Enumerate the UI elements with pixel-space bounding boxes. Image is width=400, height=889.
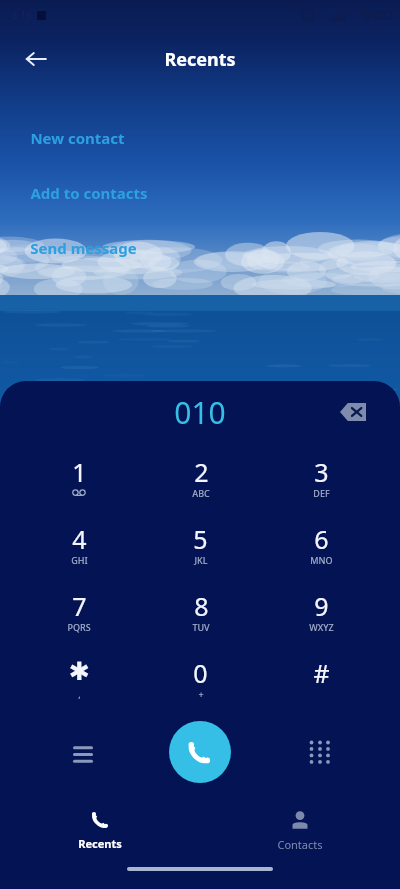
- button[interactable]: 4: [18, 510, 140, 577]
- staticText: Add to contacts: [30, 183, 148, 203]
- staticText: 6: [314, 522, 329, 552]
- button[interactable]: 3: [261, 443, 382, 510]
- staticText: Recents: [78, 836, 122, 851]
- staticText: MNO: [310, 554, 333, 566]
- button[interactable]: 8: [140, 577, 261, 644]
- staticText: WXYZ: [309, 621, 334, 633]
- staticText: 3: [314, 455, 329, 485]
- button[interactable]: Contacts: [200, 793, 400, 867]
- staticText: 0: [193, 656, 208, 686]
- button[interactable]: Back: [14, 37, 58, 81]
- button[interactable]: New contact: [0, 110, 400, 165]
- staticText: 5: [193, 522, 208, 552]
- staticText: JKL: [194, 554, 208, 566]
- button[interactable]: Keypad: [296, 729, 342, 775]
- staticText: New contact: [30, 128, 125, 148]
- staticText: 4: [72, 522, 87, 552]
- staticText: ✱: [69, 657, 90, 686]
- staticText: DEF: [313, 487, 330, 499]
- button[interactable]: 7: [18, 577, 140, 644]
- button[interactable]: Send message: [0, 220, 400, 275]
- button[interactable]: Add to contacts: [0, 165, 400, 220]
- button[interactable]: 9: [261, 577, 382, 644]
- button[interactable]: 5: [140, 510, 261, 577]
- button[interactable]: 2: [140, 443, 261, 510]
- staticText: Contacts: [277, 837, 323, 852]
- staticText: ,: [78, 688, 81, 700]
- staticText: 010: [174, 392, 226, 433]
- staticText: Send message: [30, 238, 137, 258]
- button[interactable]: #: [261, 644, 382, 711]
- staticText: +: [198, 688, 204, 700]
- button[interactable]: ✱: [18, 644, 140, 711]
- staticText: Recents: [164, 47, 236, 72]
- button[interactable]: Recents: [0, 793, 200, 867]
- staticText: #: [313, 656, 330, 686]
- staticText: ABC: [192, 487, 210, 499]
- staticText: 8: [194, 589, 209, 619]
- button[interactable]: Call: [169, 721, 231, 783]
- button[interactable]: Menu: [60, 729, 106, 775]
- button[interactable]: 6: [261, 510, 382, 577]
- staticText: TUV: [192, 621, 210, 633]
- staticText: 9: [314, 589, 329, 619]
- staticText: 1: [72, 455, 87, 485]
- staticText: 7: [72, 589, 87, 619]
- staticText: PQRS: [67, 621, 91, 633]
- staticText: GHI: [71, 554, 88, 566]
- staticText: 2: [194, 455, 209, 485]
- button[interactable]: 0: [140, 644, 261, 711]
- button[interactable]: 1: [18, 443, 140, 510]
- button[interactable]: Backspace: [332, 391, 374, 433]
